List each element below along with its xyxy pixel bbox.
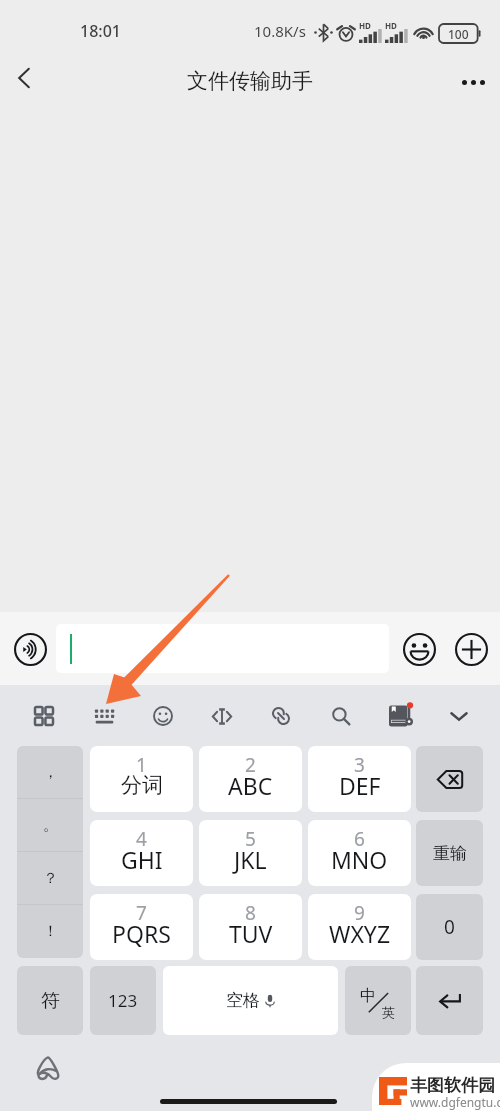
- button[interactable]: Cursor: [197, 691, 247, 741]
- button[interactable]: Apps: [19, 691, 69, 741]
- staticText: 英: [382, 1004, 395, 1020]
- staticText: 6: [354, 826, 365, 852]
- button[interactable]: Emoji: [138, 691, 188, 741]
- button[interactable]: Clipboard: [256, 691, 306, 741]
- staticText: 8: [245, 900, 256, 926]
- staticText: HD: [385, 20, 397, 31]
- staticText: www.dgfengtu.com: [410, 1094, 500, 1110]
- staticText: 123: [108, 989, 138, 1012]
- staticText: WXYZ: [329, 918, 391, 949]
- button[interactable]: 重输: [416, 820, 483, 886]
- staticText: DEF: [339, 770, 381, 801]
- staticText: 中: [360, 986, 376, 1006]
- staticText: 18:01: [80, 20, 121, 42]
- button[interactable]: 123: [90, 966, 156, 1035]
- staticText: 10.8K/s: [254, 21, 306, 41]
- staticText: 分词: [121, 772, 163, 798]
- button[interactable]: 。: [17, 799, 83, 852]
- staticText: 100: [448, 26, 469, 42]
- staticText: 。: [43, 816, 58, 835]
- button[interactable]: ，: [17, 746, 83, 799]
- staticText: 5: [245, 826, 256, 852]
- button[interactable]: 6: [308, 820, 411, 886]
- button[interactable]: 中: [345, 966, 411, 1035]
- staticText: ？: [43, 869, 58, 888]
- button[interactable]: Emoji: [397, 627, 442, 672]
- button[interactable]: ？: [17, 852, 83, 905]
- staticText: 1: [136, 752, 147, 778]
- staticText: 丰图软件园: [410, 1075, 495, 1096]
- staticText: 7: [136, 900, 147, 926]
- button[interactable]: ！: [17, 905, 83, 958]
- staticText: 9: [354, 900, 365, 926]
- staticText: TUV: [229, 918, 273, 949]
- staticText: 0: [444, 914, 455, 940]
- staticText: 空格: [226, 990, 260, 1011]
- button[interactable]: More options: [448, 57, 498, 107]
- button[interactable]: Search: [316, 691, 366, 741]
- button[interactable]: 8: [199, 894, 302, 960]
- button[interactable]: 0: [416, 894, 483, 960]
- button[interactable]: 9: [308, 894, 411, 960]
- button[interactable]: Dictionary: [375, 691, 425, 741]
- staticText: MNO: [331, 844, 388, 875]
- staticText: ABC: [228, 770, 273, 801]
- staticText: JKL: [234, 844, 267, 875]
- button[interactable]: Voice input: [8, 627, 52, 671]
- staticText: 重输: [433, 843, 467, 864]
- button[interactable]: 7: [90, 894, 193, 960]
- button[interactable]: [56, 624, 389, 673]
- button[interactable]: Keyboard layout: [79, 691, 129, 741]
- staticText: 符: [41, 989, 60, 1013]
- button[interactable]: 3: [308, 746, 411, 812]
- staticText: ，: [43, 763, 58, 782]
- button[interactable]: 5: [199, 820, 302, 886]
- button[interactable]: 空格: [163, 966, 338, 1035]
- staticText: 2: [245, 752, 256, 778]
- staticText: HD: [359, 20, 371, 31]
- button[interactable]: Back: [2, 56, 46, 100]
- button[interactable]: 1: [90, 746, 193, 812]
- staticText: ！: [43, 922, 58, 941]
- staticText: PQRS: [112, 918, 171, 949]
- button[interactable]: Hide keyboard: [434, 691, 484, 741]
- staticText: 4: [136, 826, 147, 852]
- staticText: 文件传输助手: [187, 68, 313, 94]
- button[interactable]: [416, 966, 483, 1035]
- button[interactable]: 4: [90, 820, 193, 886]
- button[interactable]: 2: [199, 746, 302, 812]
- button[interactable]: Sogou input: [26, 1046, 70, 1090]
- staticText: 3: [354, 752, 365, 778]
- button[interactable]: 符: [17, 966, 83, 1035]
- staticText: GHI: [121, 844, 163, 875]
- button[interactable]: More: [449, 627, 493, 671]
- button[interactable]: [416, 746, 483, 812]
